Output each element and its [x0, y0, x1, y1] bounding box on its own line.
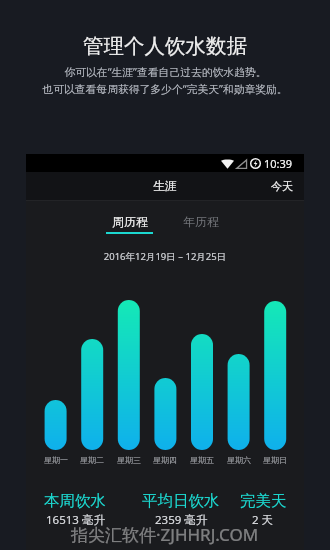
button[interactable]: 周历程	[94, 201, 165, 240]
staticText: 星期六	[223, 455, 255, 465]
staticText: 2 天	[252, 512, 274, 528]
staticText: 10:39	[264, 156, 293, 171]
staticText: 指尖汇软件·ZJHHRJ.COM	[71, 523, 259, 546]
staticText: 管理个人饮水数据	[83, 33, 247, 59]
staticText: 星期四	[149, 455, 181, 465]
staticText: 周历程	[112, 214, 148, 229]
button[interactable]: 完美天	[208, 491, 318, 528]
staticText: 也可以查看每周获得了多少个“完美天”和勋章奖励。	[42, 81, 288, 96]
staticText: 星期三	[113, 455, 145, 465]
button[interactable]: 年历程	[165, 201, 236, 240]
staticText: 星期一	[40, 455, 72, 465]
staticText: 今天	[271, 179, 293, 193]
staticText: 生涯	[153, 178, 177, 193]
button[interactable]: 平均日饮水	[126, 491, 236, 528]
staticText: 2016年12月19日 – 12月25日	[26, 250, 304, 263]
staticText: 平均日饮水	[142, 491, 220, 511]
staticText: 星期五	[186, 455, 218, 465]
staticText: 完美天	[240, 491, 287, 511]
staticText: 星期日	[259, 455, 291, 465]
staticText: 16513 毫升	[46, 512, 105, 528]
staticText: 你可以在“生涯”查看自己过去的饮水趋势。	[64, 64, 267, 79]
staticText: 年历程	[183, 214, 219, 229]
staticText: 2359 毫升	[155, 512, 208, 528]
button[interactable]: 今天	[260, 174, 304, 198]
staticText: 星期二	[76, 455, 108, 465]
staticText: 本周饮水	[44, 491, 106, 511]
button[interactable]: 本周饮水	[20, 491, 130, 528]
